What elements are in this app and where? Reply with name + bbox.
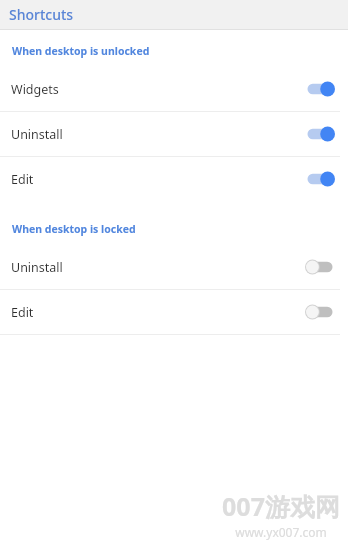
staticText: Shortcuts (9, 5, 74, 24)
button[interactable]: Uninstall (0, 245, 348, 289)
button[interactable]: Widgets (0, 67, 348, 111)
staticText: When desktop is unlocked (12, 44, 150, 58)
button[interactable]: Edit (0, 290, 348, 334)
button[interactable]: Shortcuts (0, 0, 348, 29)
staticText: www.yx007.com (235, 524, 327, 540)
staticText: Edit (11, 171, 304, 188)
staticText: 007游戏网 (222, 489, 340, 523)
button[interactable]: Edit (0, 157, 348, 201)
staticText: Widgets (11, 81, 304, 98)
staticText: Edit (11, 304, 304, 321)
staticText: When desktop is locked (12, 222, 136, 236)
button[interactable]: Uninstall (0, 112, 348, 156)
staticText: Uninstall (11, 126, 304, 143)
staticText: Uninstall (11, 259, 304, 276)
